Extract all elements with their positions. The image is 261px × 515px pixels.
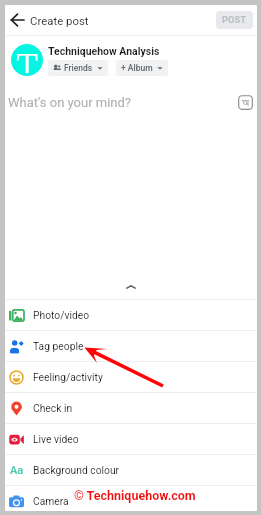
button[interactable]: Friends — [48, 60, 108, 76]
staticText: Tag people — [33, 340, 84, 352]
button[interactable]: Feeling/activity — [5, 362, 257, 392]
button[interactable]: POST — [216, 11, 253, 29]
button[interactable]: Check in — [5, 393, 257, 423]
button[interactable]: Collapse — [5, 277, 257, 299]
button[interactable]: Tag people — [5, 331, 257, 361]
button[interactable]: Language — [238, 95, 253, 110]
staticText: Feeling/activity — [33, 371, 103, 383]
staticText: Techniquehow Analysis — [48, 45, 160, 57]
staticText: Live video — [33, 433, 79, 445]
staticText: অ — [242, 97, 249, 108]
staticText: Photo/video — [33, 309, 90, 321]
staticText: What's on your mind? — [8, 95, 132, 110]
staticText: Create post — [30, 14, 89, 27]
staticText: Camera — [33, 495, 69, 507]
staticText: + Album — [121, 63, 153, 73]
staticText: Aa — [10, 464, 24, 477]
button[interactable]: Back — [7, 8, 31, 32]
staticText: Background colour — [33, 464, 120, 476]
button[interactable]: Aa — [5, 455, 257, 485]
button[interactable]: + Album — [116, 60, 168, 76]
staticText: © Techniquehow.com — [74, 488, 196, 503]
button[interactable]: Live video — [5, 424, 257, 454]
button[interactable]: Camera — [5, 486, 257, 511]
staticText: T — [16, 44, 39, 73]
button[interactable]: Photo/video — [5, 300, 257, 330]
staticText: Check in — [33, 402, 73, 414]
staticText: Friends — [64, 63, 93, 73]
staticText: POST — [222, 15, 247, 26]
